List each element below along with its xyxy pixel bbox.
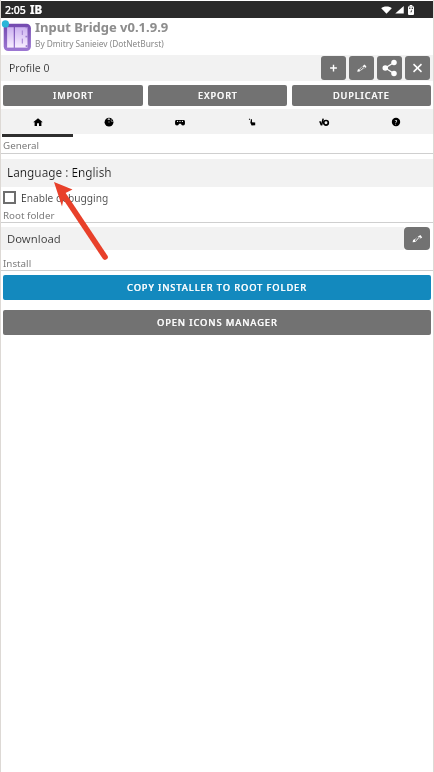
button[interactable]: Macros — [288, 109, 360, 134]
button[interactable]: Share profile — [377, 56, 402, 80]
button[interactable]: Help — [360, 109, 432, 134]
button[interactable]: Touch — [216, 109, 288, 134]
staticText: IB — [30, 2, 43, 18]
button[interactable]: COPY INSTALLER TO ROOT FOLDER — [3, 275, 431, 300]
staticText: DUPLICATE — [333, 89, 390, 102]
button[interactable]: Browse folder — [404, 227, 430, 250]
button[interactable]: OPEN ICONS MANAGER — [3, 310, 431, 335]
staticText: General — [3, 139, 40, 152]
button[interactable]: DUPLICATE — [292, 85, 431, 106]
button[interactable]: EXPORT — [148, 85, 287, 106]
button[interactable]: Gamepad — [144, 109, 216, 134]
button[interactable]: IMPORT — [3, 85, 143, 106]
button[interactable]: Home — [2, 109, 73, 134]
staticText: Install — [3, 257, 32, 270]
staticText: IMPORT — [53, 89, 94, 102]
button[interactable]: Delete profile — [405, 56, 430, 80]
button[interactable]: Add profile — [321, 56, 346, 80]
staticText: Input Bridge v0.1.9.9 — [35, 18, 169, 36]
button[interactable]: Mouse — [73, 109, 144, 134]
staticText: Download — [7, 231, 61, 246]
button[interactable]: Edit profile — [349, 56, 374, 80]
staticText: EXPORT — [198, 89, 238, 102]
staticText: OPEN ICONS MANAGER — [157, 316, 278, 329]
staticText: Enable debugging — [21, 191, 109, 205]
staticText: COPY INSTALLER TO ROOT FOLDER — [127, 281, 307, 294]
staticText: Profile 0 — [9, 61, 50, 75]
staticText: 2:05 — [5, 3, 26, 17]
button[interactable]: Enable debugging — [0, 187, 434, 208]
staticText: Root folder — [3, 209, 55, 222]
button[interactable]: Download — [0, 227, 404, 250]
staticText: Language : English — [7, 164, 112, 180]
button[interactable]: Language : English — [0, 159, 434, 187]
staticText: By Dmitry Sanieiev (DotNetBurst) — [35, 38, 164, 49]
